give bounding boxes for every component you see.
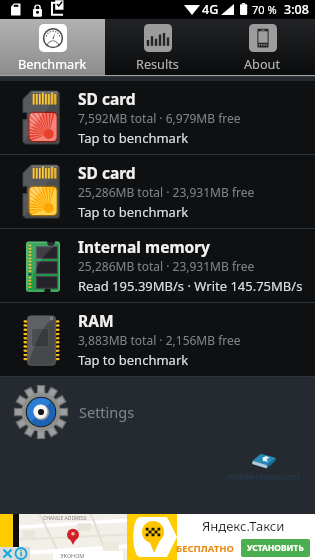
button[interactable]: RAM [0,303,315,376]
staticText: Results [136,55,179,72]
staticText: ЭКОНОМ [60,552,85,559]
button[interactable]: SD card [0,81,315,154]
staticText: 70 % [252,2,277,17]
staticText: Tap to benchmark [78,351,189,369]
staticText: Internal memory [78,236,210,257]
staticText: Benchmark [18,55,87,72]
button[interactable]: УСТАНОВИТЬ [247,542,304,554]
button[interactable]: Internal memory [0,229,315,302]
staticText: Settings [79,402,135,422]
staticText: Read 195.39MB/s · Write 145.75MB/s [78,277,303,295]
staticText: SD card [78,162,136,183]
staticText: RAM [78,310,114,331]
staticText: SD card [78,88,136,109]
staticText: 7,592MB total · 6,979MB free [78,110,241,126]
staticText: About [244,55,281,72]
staticText: Яндекс.Такси [202,517,285,535]
button[interactable]: Benchmark [0,19,105,75]
staticText: БЕСПЛАТНО [176,542,234,555]
staticText: 3:08 [284,1,309,18]
staticText: mobile-review.com [227,471,300,482]
staticText: 25,286MB total · 23,931MB free [78,184,255,200]
button[interactable]: Settings [0,377,315,446]
staticText: УСТАНОВИТЬ [247,542,304,554]
button[interactable]: Results [105,19,210,75]
button[interactable]: CHANGE ADDRESS [0,514,315,560]
staticText: CHANGE ADDRESS [43,515,87,522]
staticText: Tap to benchmark [78,129,189,147]
staticText: Tap to benchmark [78,203,189,221]
staticText: 25,286MB total · 23,931MB free [78,258,255,274]
staticText: 3,883MB total · 2,156MB free [78,332,241,348]
button[interactable]: SD card [0,155,315,228]
button[interactable]: About [210,19,315,75]
staticText: 4G [202,1,219,18]
